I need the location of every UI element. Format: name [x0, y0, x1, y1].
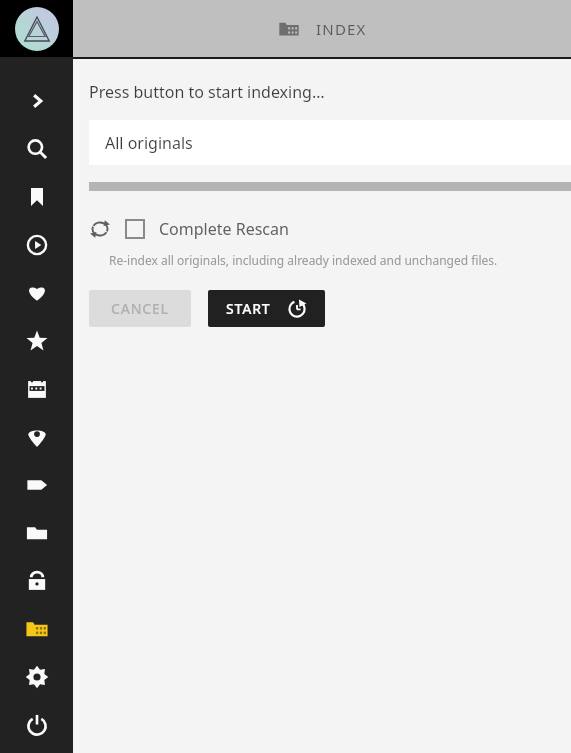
staticText: Press button to start indexing… — [89, 81, 325, 103]
other: Rescan — [89, 218, 111, 240]
button[interactable]: Settings — [0, 653, 73, 701]
button[interactable]: Places — [0, 413, 73, 461]
button[interactable]: Expand — [0, 77, 73, 125]
button[interactable]: Favorites — [0, 269, 73, 317]
button[interactable]: Private — [0, 557, 73, 605]
staticText: START — [226, 299, 271, 318]
button[interactable]: Complete Rescan — [125, 218, 289, 240]
button[interactable]: Calendar — [0, 365, 73, 413]
staticText: CANCEL — [111, 299, 169, 318]
staticText: All originals — [105, 132, 193, 154]
button[interactable]: Labels — [0, 461, 73, 509]
staticText: Re-index all originals, including alread… — [109, 252, 498, 268]
button[interactable]: Logout — [0, 701, 73, 749]
button[interactable]: Search — [0, 125, 73, 173]
other: Index — [278, 18, 300, 40]
button[interactable]: Folders — [0, 509, 73, 557]
button[interactable]: Videos — [0, 221, 73, 269]
button[interactable]: START — [208, 290, 325, 327]
button[interactable]: Logo — [0, 0, 73, 57]
button[interactable]: CANCEL — [89, 290, 191, 327]
button[interactable]: Bookmarks — [0, 173, 73, 221]
button[interactable]: Starred — [0, 317, 73, 365]
staticText: INDEX — [316, 19, 367, 39]
button[interactable]: Index — [0, 605, 73, 653]
staticText: Complete Rescan — [159, 218, 289, 240]
button[interactable]: All originals — [89, 120, 571, 165]
